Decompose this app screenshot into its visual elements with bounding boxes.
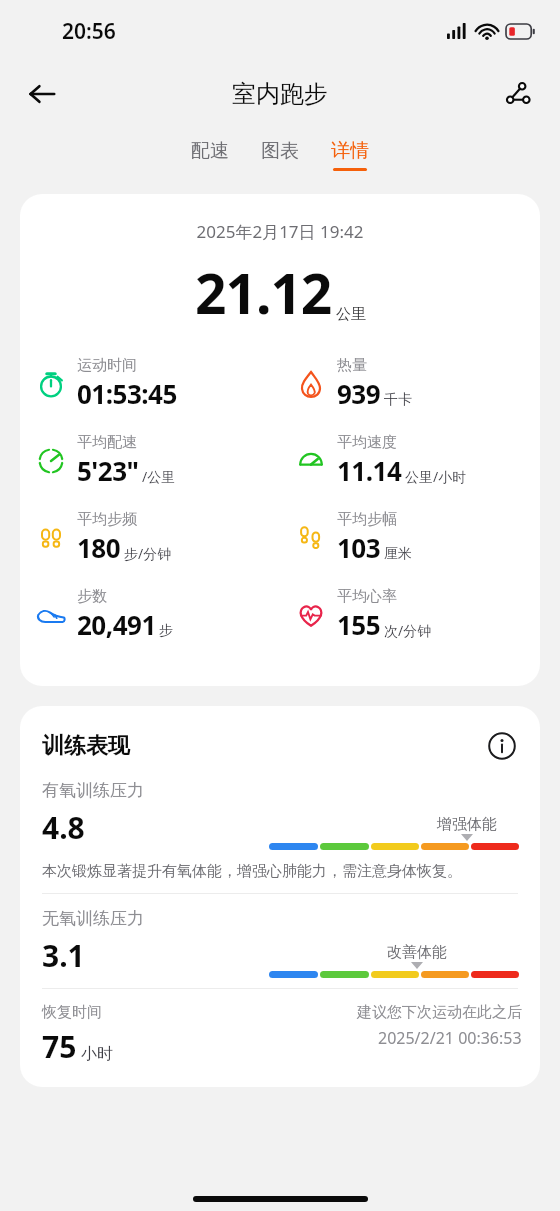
staticText: 155 xyxy=(337,607,381,642)
staticText: 平均步频 xyxy=(77,510,137,529)
staticText: 3.1 xyxy=(42,935,85,976)
staticText: 配速 xyxy=(191,139,229,163)
staticText: 步 xyxy=(159,622,173,640)
staticText: 室内跑步 xyxy=(232,79,328,109)
button[interactable]: 配速 xyxy=(185,139,235,171)
staticText: 01:53:45 xyxy=(77,376,177,411)
staticText: 公里 xyxy=(336,305,366,324)
staticText: 4.8 xyxy=(42,807,85,848)
staticText: 改善体能 xyxy=(379,943,455,962)
staticText: 千卡 xyxy=(384,391,412,409)
staticText: 步数 xyxy=(77,587,107,606)
staticText: 厘米 xyxy=(384,545,412,563)
staticText: 103 xyxy=(337,530,381,565)
button[interactable]: Info xyxy=(482,726,522,766)
staticText: 增强体能 xyxy=(429,815,505,834)
staticText: 次/分钟 xyxy=(384,621,432,640)
staticText: 21.12 xyxy=(195,255,332,330)
staticText: 图表 xyxy=(261,139,299,163)
staticText: 步/分钟 xyxy=(124,544,172,563)
staticText: 平均步幅 xyxy=(337,510,397,529)
staticText: 小时 xyxy=(81,1044,113,1064)
staticText: 训练表现 xyxy=(42,732,482,760)
staticText: 运动时间 xyxy=(77,356,137,375)
staticText: 恢复时间 xyxy=(42,1003,102,1022)
staticText: 平均配速 xyxy=(77,433,137,452)
staticText: 20,491 xyxy=(77,607,156,642)
staticText: 公里/小时 xyxy=(405,467,467,486)
staticText: 2025年2月17日 19:42 xyxy=(20,220,540,243)
staticText: 11.14 xyxy=(337,453,402,488)
staticText: 本次锻炼显著提升有氧体能，增强心肺能力，需注意身体恢复。 xyxy=(42,862,462,881)
staticText: 2025/2/21 00:36:53 xyxy=(378,1027,522,1049)
staticText: 20:56 xyxy=(62,17,116,46)
staticText: 详情 xyxy=(331,139,369,163)
staticText: 75 xyxy=(42,1026,77,1067)
staticText: 热量 xyxy=(337,356,367,375)
staticText: 建议您下次运动在此之后 xyxy=(357,1003,522,1022)
staticText: 平均速度 xyxy=(337,433,397,452)
staticText: 无氧训练压力 xyxy=(42,908,144,929)
staticText: 有氧训练压力 xyxy=(42,780,144,801)
button[interactable]: Share xyxy=(490,66,546,122)
button[interactable]: Back xyxy=(14,66,70,122)
staticText: 939 xyxy=(337,376,381,411)
button[interactable]: 图表 xyxy=(255,139,305,171)
staticText: /公里 xyxy=(142,467,176,486)
staticText: 180 xyxy=(77,530,121,565)
staticText: 平均心率 xyxy=(337,587,397,606)
staticText: 5'23" xyxy=(77,453,139,488)
button[interactable]: 详情 xyxy=(325,139,375,171)
